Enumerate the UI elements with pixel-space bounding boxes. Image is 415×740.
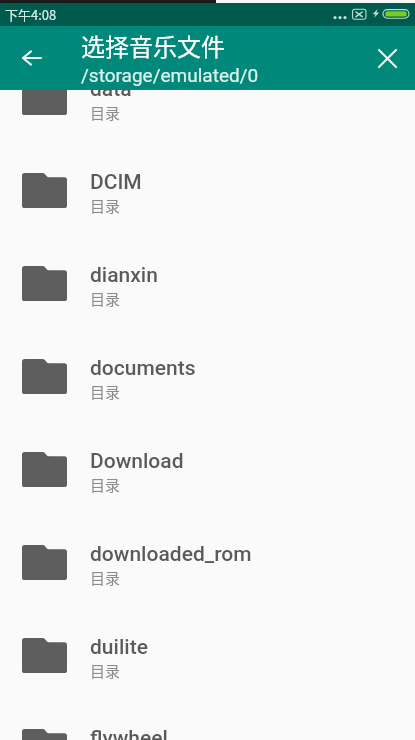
staticText: 目录 bbox=[90, 474, 121, 496]
staticText: 目录 bbox=[90, 660, 121, 682]
staticText: 选择音乐文件 bbox=[81, 28, 225, 63]
button[interactable]: DCIM bbox=[0, 144, 415, 237]
staticText: 目录 bbox=[90, 567, 121, 589]
button[interactable]: flywheel bbox=[0, 702, 415, 740]
staticText: /storage/emulated/0 bbox=[81, 64, 259, 86]
staticText: 目录 bbox=[90, 381, 121, 403]
staticText: dianxin bbox=[90, 263, 158, 288]
staticText: Download bbox=[90, 449, 184, 474]
button[interactable]: duilite bbox=[0, 609, 415, 702]
staticText: duilite bbox=[90, 635, 148, 660]
staticText: DCIM bbox=[90, 170, 142, 195]
button[interactable]: downloaded_rom bbox=[0, 516, 415, 609]
button[interactable]: Download bbox=[0, 423, 415, 516]
button[interactable]: dianxin bbox=[0, 237, 415, 330]
staticText: 目录 bbox=[90, 102, 121, 124]
staticText: data bbox=[90, 77, 132, 102]
staticText: flywheel bbox=[90, 726, 168, 740]
staticText: 下午4:08 bbox=[5, 5, 57, 24]
button[interactable]: data bbox=[0, 51, 415, 144]
button[interactable]: documents bbox=[0, 330, 415, 423]
button[interactable]: Back bbox=[14, 40, 50, 76]
staticText: 目录 bbox=[90, 195, 121, 217]
staticText: 目录 bbox=[90, 288, 121, 310]
button[interactable]: Close bbox=[368, 39, 406, 77]
staticText: downloaded_rom bbox=[90, 542, 252, 567]
staticText: documents bbox=[90, 356, 196, 381]
